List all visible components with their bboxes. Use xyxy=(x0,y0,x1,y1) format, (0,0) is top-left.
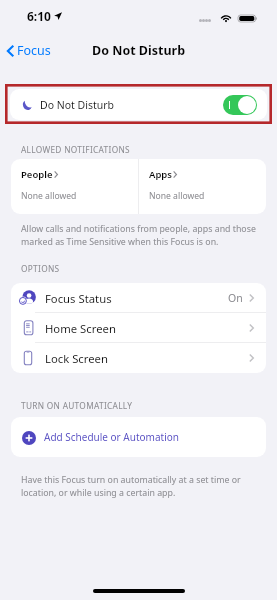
staticText: None allowed xyxy=(21,190,77,202)
staticText: Home Screen xyxy=(45,321,116,336)
staticText: Allow calls and notifications from peopl… xyxy=(21,223,256,247)
staticText: People xyxy=(21,168,53,181)
staticText: Have this Focus turn on automatically at… xyxy=(21,474,241,498)
staticText: Do Not Disturb xyxy=(92,42,186,59)
button[interactable]: Focus Status xyxy=(11,283,266,313)
staticText: Apps xyxy=(149,168,172,181)
staticText: On xyxy=(228,291,243,305)
staticText: TURN ON AUTOMATICALLY xyxy=(21,400,133,411)
staticText: Lock Screen xyxy=(45,351,108,366)
staticText: ALLOWED NOTIFICATIONS xyxy=(21,144,130,155)
button[interactable]: Apps xyxy=(139,159,266,214)
button[interactable]: Add Schedule or Automation xyxy=(11,417,266,457)
staticText: None allowed xyxy=(149,190,205,202)
button[interactable]: People xyxy=(11,159,138,214)
staticText: Do Not Disturb xyxy=(40,98,115,112)
staticText: OPTIONS xyxy=(21,263,60,274)
button[interactable]: Do Not Disturb xyxy=(10,89,267,120)
button[interactable]: Lock Screen xyxy=(11,343,266,373)
button[interactable]: Home Screen xyxy=(11,313,266,343)
staticText: Add Schedule or Automation xyxy=(44,430,179,444)
button[interactable]: Focus xyxy=(0,38,59,60)
staticText: Focus xyxy=(17,42,51,59)
staticText: 6:10 xyxy=(27,8,51,24)
button[interactable]: Do Not Disturb toggle xyxy=(223,95,257,115)
staticText: Focus Status xyxy=(45,291,112,306)
